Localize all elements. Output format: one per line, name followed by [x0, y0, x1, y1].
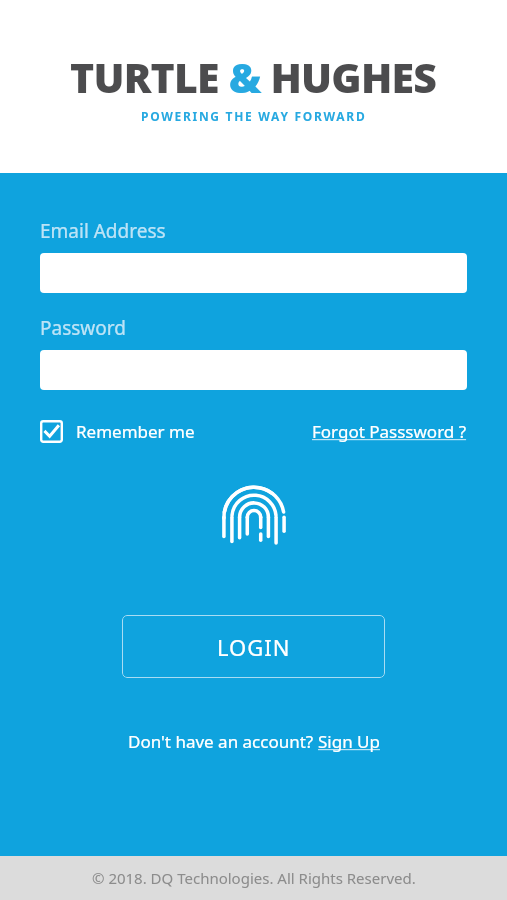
staticText: LOGIN	[217, 632, 291, 662]
button[interactable]: Login with fingerprint	[222, 484, 286, 548]
button[interactable]: Remember me	[40, 416, 195, 447]
staticText: Email Address	[40, 218, 166, 244]
staticText: Password	[40, 315, 126, 341]
button[interactable]: Forgot Passsword ?	[312, 416, 467, 447]
button[interactable]: Password field	[40, 350, 467, 390]
staticText: TURTLE & HUGHES	[70, 49, 437, 105]
button[interactable]: Don't have an account?	[122, 724, 386, 759]
staticText: Forgot Passsword ?	[312, 420, 467, 443]
staticText: © 2018. DQ Technologies. All Rights Rese…	[92, 868, 416, 888]
button[interactable]: LOGIN	[122, 615, 385, 678]
staticText: POWERING THE WAY FORWARD	[141, 108, 367, 124]
staticText: Remember me	[76, 420, 195, 443]
staticText: Sign Up	[318, 730, 380, 753]
button[interactable]: Email Address field	[40, 253, 467, 293]
staticText: Don't have an account?	[128, 730, 318, 753]
